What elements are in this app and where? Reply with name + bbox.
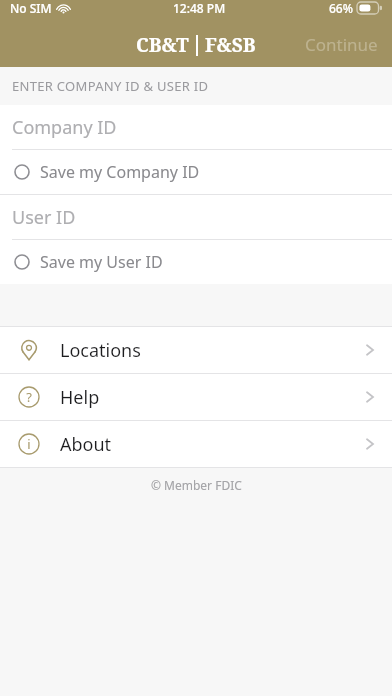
button[interactable]: Save my Company ID bbox=[0, 150, 392, 194]
staticText: Help bbox=[60, 385, 100, 410]
staticText: Continue bbox=[305, 33, 378, 56]
staticText: Save my Company ID bbox=[40, 161, 200, 183]
staticText: CB&T bbox=[136, 32, 189, 58]
staticText: ENTER COMPANY ID & USER ID bbox=[12, 77, 209, 95]
staticText: Company ID bbox=[12, 115, 117, 140]
button[interactable]: User ID bbox=[0, 195, 392, 239]
staticText: 66% bbox=[329, 0, 353, 16]
button[interactable]: Save my User ID bbox=[0, 240, 392, 284]
other: Open bbox=[364, 341, 376, 359]
staticText: About bbox=[60, 432, 112, 457]
button[interactable]: Locations bbox=[0, 327, 392, 373]
staticText: F&SB bbox=[205, 32, 256, 58]
staticText: ? bbox=[26, 388, 32, 406]
other: Open bbox=[364, 435, 376, 453]
staticText: © Member FDIC bbox=[151, 477, 242, 493]
staticText: Locations bbox=[60, 338, 141, 363]
button[interactable]: Continue bbox=[291, 24, 392, 65]
button[interactable]: ? bbox=[0, 374, 392, 420]
staticText: Save my User ID bbox=[40, 251, 163, 273]
staticText: i bbox=[27, 435, 31, 453]
other: Open bbox=[364, 388, 376, 406]
button[interactable]: i bbox=[0, 421, 392, 467]
staticText: User ID bbox=[12, 205, 76, 230]
staticText: 12:48 PM bbox=[173, 0, 226, 16]
staticText: No SIM bbox=[10, 0, 52, 16]
button[interactable]: Company ID bbox=[0, 105, 392, 149]
